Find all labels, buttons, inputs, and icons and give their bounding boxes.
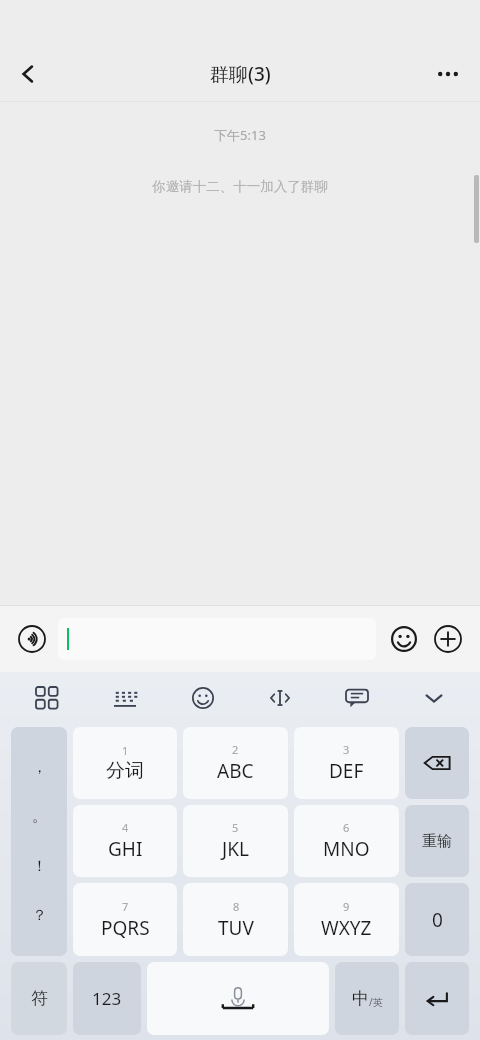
button[interactable]: Messages xyxy=(318,672,395,724)
staticText: GHI xyxy=(108,836,143,862)
staticText: MNO xyxy=(323,836,370,862)
button[interactable]: 7 PQRS xyxy=(73,883,177,956)
staticText: 下午5:13 xyxy=(0,126,480,144)
button[interactable]: Re-enter xyxy=(405,805,469,877)
staticText: 0 xyxy=(432,907,443,933)
button[interactable]: More functions xyxy=(426,617,470,661)
staticText: 群聊(3) xyxy=(210,61,271,87)
button[interactable]: 2 ABC xyxy=(183,727,288,799)
button[interactable]: Punctuation xyxy=(11,727,67,956)
button[interactable]: 0 xyxy=(405,883,469,956)
staticText: 你邀请十二、十一加入了群聊 xyxy=(0,178,480,195)
button[interactable]: 6 MNO xyxy=(294,805,399,877)
staticText: DEF xyxy=(329,758,364,784)
staticText: JKL xyxy=(222,836,249,862)
staticText: 123 xyxy=(92,987,122,1010)
button[interactable]: Keyboard layouts xyxy=(8,672,86,724)
button[interactable]: Switch language xyxy=(335,962,399,1035)
staticText: /英 xyxy=(369,995,383,1009)
button[interactable]: Move cursor xyxy=(241,672,318,724)
staticText: 4 xyxy=(122,820,129,835)
button[interactable]: 4 GHI xyxy=(73,805,177,877)
button[interactable]: 1 分词 xyxy=(73,727,177,799)
button[interactable]: Hide keyboard xyxy=(395,672,472,724)
staticText: 符 xyxy=(31,988,48,1009)
staticText: 分词 xyxy=(106,759,144,783)
button[interactable]: 3 DEF xyxy=(294,727,399,799)
button[interactable]: Backspace xyxy=(405,727,469,799)
button[interactable]: Emoji xyxy=(164,672,241,724)
button[interactable]: Back xyxy=(4,50,52,98)
button[interactable]: 9 WXYZ xyxy=(294,883,399,956)
button[interactable]: Enter xyxy=(405,962,469,1035)
button[interactable]: More options xyxy=(424,50,472,98)
staticText: ABC xyxy=(217,758,254,784)
staticText: 3 xyxy=(343,742,350,757)
staticText: 2 xyxy=(232,742,239,757)
staticText: 中 xyxy=(352,988,369,1009)
staticText: 1 xyxy=(122,743,129,758)
button[interactable]: Symbols xyxy=(11,962,67,1035)
staticText: 8 xyxy=(233,899,240,914)
button[interactable]: Numbers xyxy=(73,962,141,1035)
button[interactable]: 8 TUV xyxy=(183,883,288,956)
button[interactable]: Space xyxy=(147,962,329,1035)
button[interactable]: Voice input xyxy=(10,617,54,661)
staticText: 重输 xyxy=(422,832,452,851)
staticText: ！ xyxy=(32,857,47,876)
staticText: ？ xyxy=(32,906,47,925)
button[interactable]: Emoji xyxy=(382,617,426,661)
staticText: 。 xyxy=(32,807,47,826)
staticText: WXYZ xyxy=(321,915,372,941)
staticText: PQRS xyxy=(101,915,150,941)
staticText: TUV xyxy=(218,915,254,941)
staticText: 9 xyxy=(343,899,350,914)
staticText: 6 xyxy=(343,820,350,835)
button[interactable]: 5 JKL xyxy=(183,805,288,877)
staticText: 7 xyxy=(122,899,129,914)
button[interactable]: Keyboard xyxy=(86,672,164,724)
staticText: ， xyxy=(32,758,47,777)
button[interactable] xyxy=(58,618,376,660)
staticText: 5 xyxy=(232,820,239,835)
